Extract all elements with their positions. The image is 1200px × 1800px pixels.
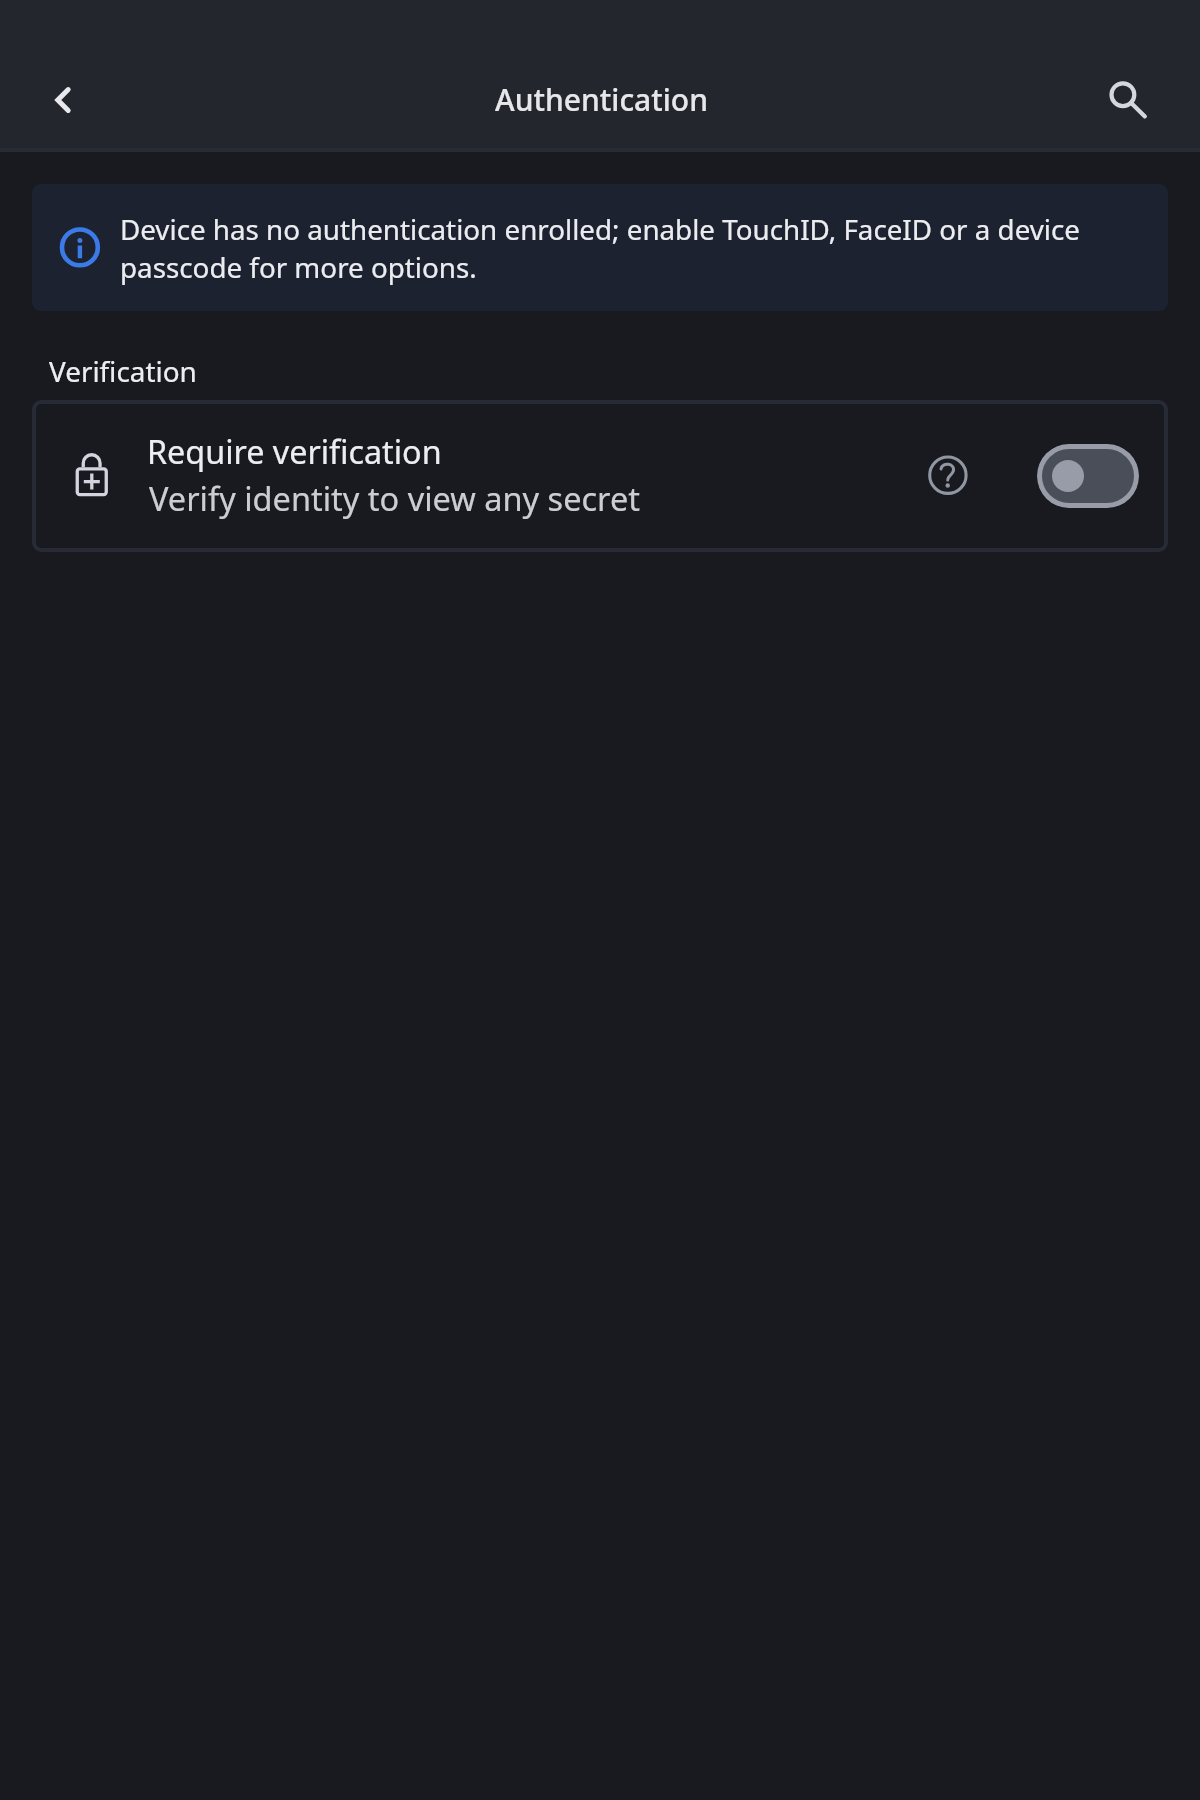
staticText: Verify identity to view any secret xyxy=(149,476,640,520)
button[interactable]: Require verification toggle xyxy=(1037,444,1139,508)
button[interactable]: Back xyxy=(26,62,102,138)
button[interactable]: Search xyxy=(1086,58,1162,134)
staticText: Authentication xyxy=(495,79,708,120)
staticText: Verification xyxy=(49,352,197,390)
staticText: Require verification xyxy=(147,429,442,473)
staticText: Device has no authentication enrolled; e… xyxy=(120,210,1110,286)
button[interactable]: Help xyxy=(924,444,988,508)
button[interactable]: Require verification xyxy=(32,400,1168,552)
